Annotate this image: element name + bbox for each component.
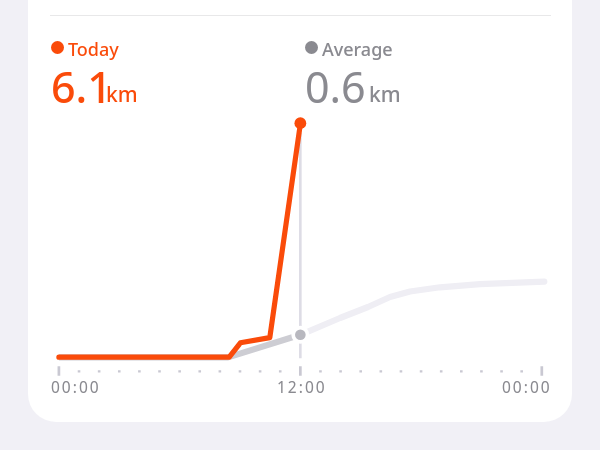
- button[interactable]: Average: [305, 33, 505, 105]
- staticText: 00:00: [502, 376, 552, 397]
- staticText: km: [106, 80, 138, 109]
- staticText: 0.6: [305, 57, 366, 116]
- staticText: 12:00: [277, 376, 327, 397]
- staticText: 00:00: [51, 376, 101, 397]
- staticText: 6.1: [51, 57, 112, 116]
- button[interactable]: Today: [51, 33, 251, 105]
- staticText: Average: [322, 37, 393, 62]
- staticText: km: [369, 80, 401, 109]
- staticText: Today: [68, 37, 119, 62]
